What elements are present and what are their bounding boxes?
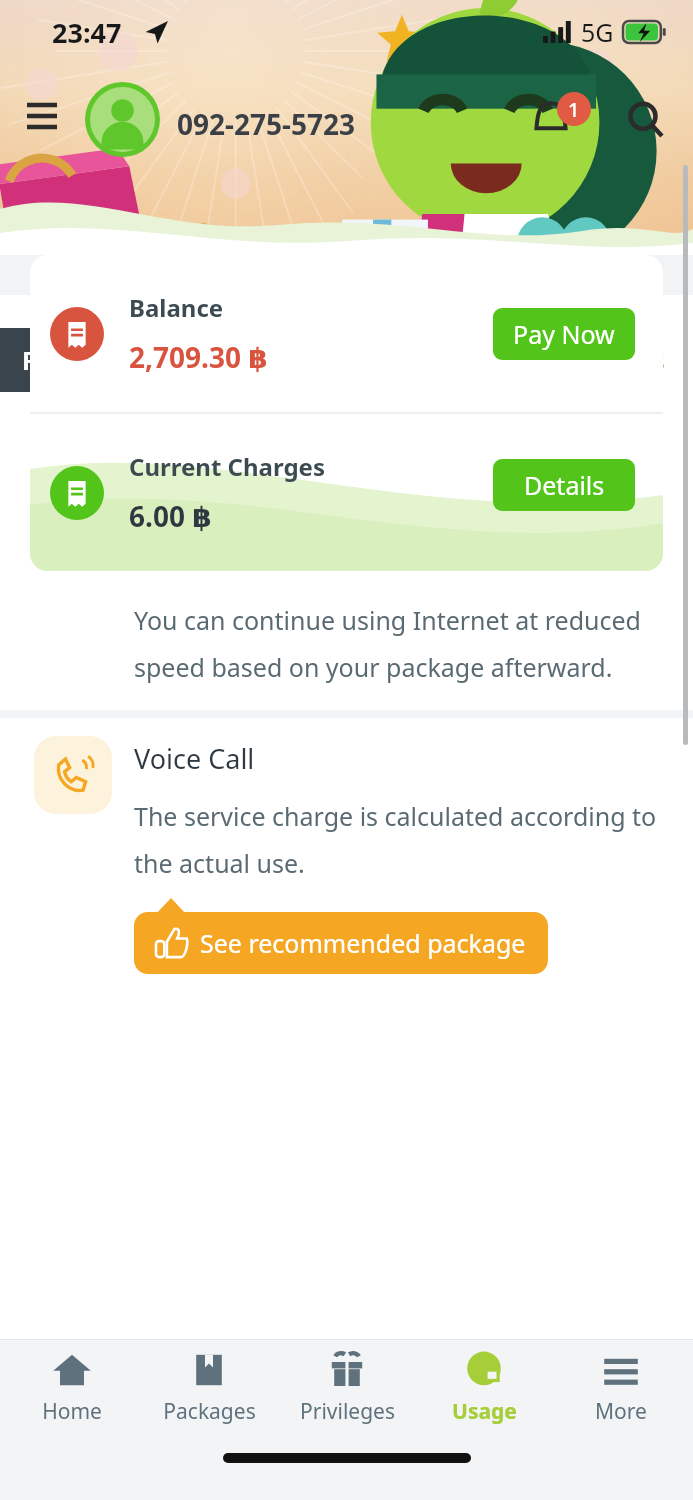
- staticText: Details: [524, 468, 605, 502]
- staticText: Usage: [452, 1397, 517, 1426]
- staticText: Voice Call: [134, 740, 255, 777]
- staticText: 5G: [581, 15, 614, 49]
- staticText: Remaining Usage: [22, 343, 240, 377]
- button[interactable]: Current Charges: [30, 414, 663, 571]
- staticText: 2,709.30 ฿: [129, 338, 268, 376]
- button[interactable]: Privileges: [282, 1350, 412, 1426]
- button[interactable]: Packages: [144, 1350, 274, 1426]
- staticText: 50 GB: [591, 535, 661, 569]
- staticText: Current Charges: [129, 450, 325, 483]
- button[interactable]: Home: [7, 1350, 137, 1426]
- button[interactable]: Details: [493, 459, 635, 511]
- button[interactable]: Notifications: [525, 94, 577, 146]
- button[interactable]: Balance: [30, 255, 663, 412]
- staticText: Privileges: [300, 1397, 395, 1426]
- staticText: 6.00 ฿: [129, 497, 212, 535]
- button[interactable]: Search: [620, 94, 672, 146]
- staticText: 092-275-5723: [177, 105, 356, 143]
- staticText: The service charge is calculated accordi…: [134, 799, 657, 880]
- button[interactable]: Menu: [20, 94, 64, 138]
- staticText: Packages: [163, 1397, 256, 1426]
- staticText: Home: [42, 1397, 102, 1426]
- button[interactable]: See recommended package: [134, 912, 548, 974]
- button[interactable]: Pay Now: [493, 308, 635, 360]
- staticText: 23:47: [52, 14, 122, 51]
- staticText: Pay Now: [513, 317, 615, 351]
- button[interactable]: Profile: [85, 82, 160, 157]
- staticText: More: [595, 1397, 647, 1426]
- staticText: See Details: [536, 343, 665, 377]
- staticText: Balance: [129, 291, 224, 324]
- staticText: See recommended package: [200, 926, 526, 960]
- button[interactable]: Usage: [419, 1350, 549, 1426]
- button[interactable]: See Details: [536, 343, 665, 377]
- staticText: Internet: [134, 429, 238, 466]
- staticText: You can continue using Internet at reduc…: [134, 603, 641, 684]
- staticText: 1: [568, 96, 580, 123]
- button[interactable]: More: [556, 1350, 686, 1426]
